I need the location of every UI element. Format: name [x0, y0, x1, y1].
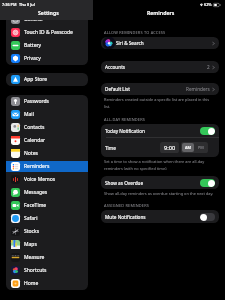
staticText: Accounts — [105, 64, 126, 70]
staticText: 7:36 PM — [2, 2, 17, 7]
staticText: Default List — [105, 86, 130, 92]
button[interactable]: Notes — [6, 147, 88, 160]
staticText: Set a time to show a notification when t… — [104, 159, 214, 171]
button[interactable]: Time — [101, 138, 219, 157]
staticText: App Store — [24, 76, 48, 83]
button[interactable]: 9:00 — [160, 142, 179, 153]
button[interactable]: Privacy — [6, 52, 88, 65]
staticText: Notes — [24, 150, 38, 157]
staticText: Show all-day reminders as overdue starti… — [104, 191, 214, 196]
staticText: Show as Overdue — [105, 180, 144, 186]
staticText: Time — [105, 145, 116, 151]
button[interactable]: Shortcuts — [6, 264, 88, 277]
staticText: 2 — [207, 64, 210, 70]
staticText: Battery — [24, 42, 42, 49]
button[interactable]: Touch ID & Passcode — [6, 26, 88, 39]
button[interactable]: Stocks — [6, 225, 88, 238]
button[interactable]: Default List — [101, 83, 219, 95]
staticText: Messages — [24, 189, 48, 196]
staticText: Measure — [24, 254, 45, 261]
button[interactable]: Messages — [6, 186, 88, 199]
staticText: Home — [24, 280, 39, 287]
staticText: Touch ID & Passcode — [24, 29, 73, 36]
staticText: Contacts — [24, 124, 45, 131]
staticText: Maps — [24, 241, 37, 248]
button[interactable]: Home — [6, 277, 88, 290]
button[interactable]: General — [6, 13, 88, 26]
staticText: Reminders — [186, 86, 210, 92]
button[interactable]: Mail — [6, 108, 88, 121]
staticText: Settings — [38, 9, 59, 16]
staticText: ASSIGNED REMINDERS — [104, 203, 150, 208]
button[interactable]: Maps — [6, 238, 88, 251]
staticText: 62% — [204, 2, 212, 7]
staticText: Thu 8 Jul — [19, 2, 35, 7]
staticText: Shortcuts — [24, 267, 47, 274]
staticText: ALLOW REMINDERS TO ACCESS — [104, 30, 166, 35]
button[interactable]: App Store — [6, 73, 88, 86]
button[interactable]: Siri & Search — [101, 37, 219, 49]
staticText: FaceTime — [24, 202, 47, 209]
staticText: Siri & Search — [116, 40, 144, 46]
staticText: AM — [185, 145, 191, 150]
button[interactable]: Today Notification — [101, 124, 219, 137]
staticText: General — [24, 16, 43, 23]
staticText: Safari — [24, 215, 38, 222]
staticText: Calendar — [24, 137, 46, 144]
staticText: Reminders created outside a specific lis… — [104, 97, 214, 109]
button[interactable]: PM — [194, 143, 207, 152]
staticText: ALL-DAY REMINDERS — [104, 117, 146, 122]
button[interactable]: Contacts — [6, 121, 88, 134]
staticText: Today Notification — [105, 128, 145, 134]
button[interactable]: Accounts — [101, 61, 219, 73]
button[interactable]: Safari — [6, 212, 88, 225]
staticText: Privacy — [24, 55, 41, 62]
button[interactable]: AM — [182, 143, 194, 152]
staticText: Mail — [24, 111, 34, 118]
button[interactable]: Show as Overdue — [101, 176, 219, 189]
button[interactable]: Calendar — [6, 134, 88, 147]
staticText: Voice Memos — [24, 176, 56, 183]
staticText: Mute Notifications — [105, 214, 146, 220]
button[interactable]: FaceTime — [6, 199, 88, 212]
button[interactable]: Mute Notifications — [101, 210, 219, 223]
staticText: Stocks — [24, 228, 40, 235]
button[interactable]: Passwords — [6, 95, 88, 108]
staticText: Reminders — [147, 9, 175, 16]
staticText: 9:00 — [164, 144, 176, 152]
staticText: PM — [198, 145, 204, 150]
staticText: Passwords — [24, 98, 50, 105]
button[interactable]: Measure — [6, 251, 88, 264]
button[interactable]: Voice Memos — [6, 173, 88, 186]
staticText: Reminders — [24, 163, 50, 170]
button[interactable]: Reminders — [6, 160, 88, 173]
button[interactable]: Battery — [6, 39, 88, 52]
